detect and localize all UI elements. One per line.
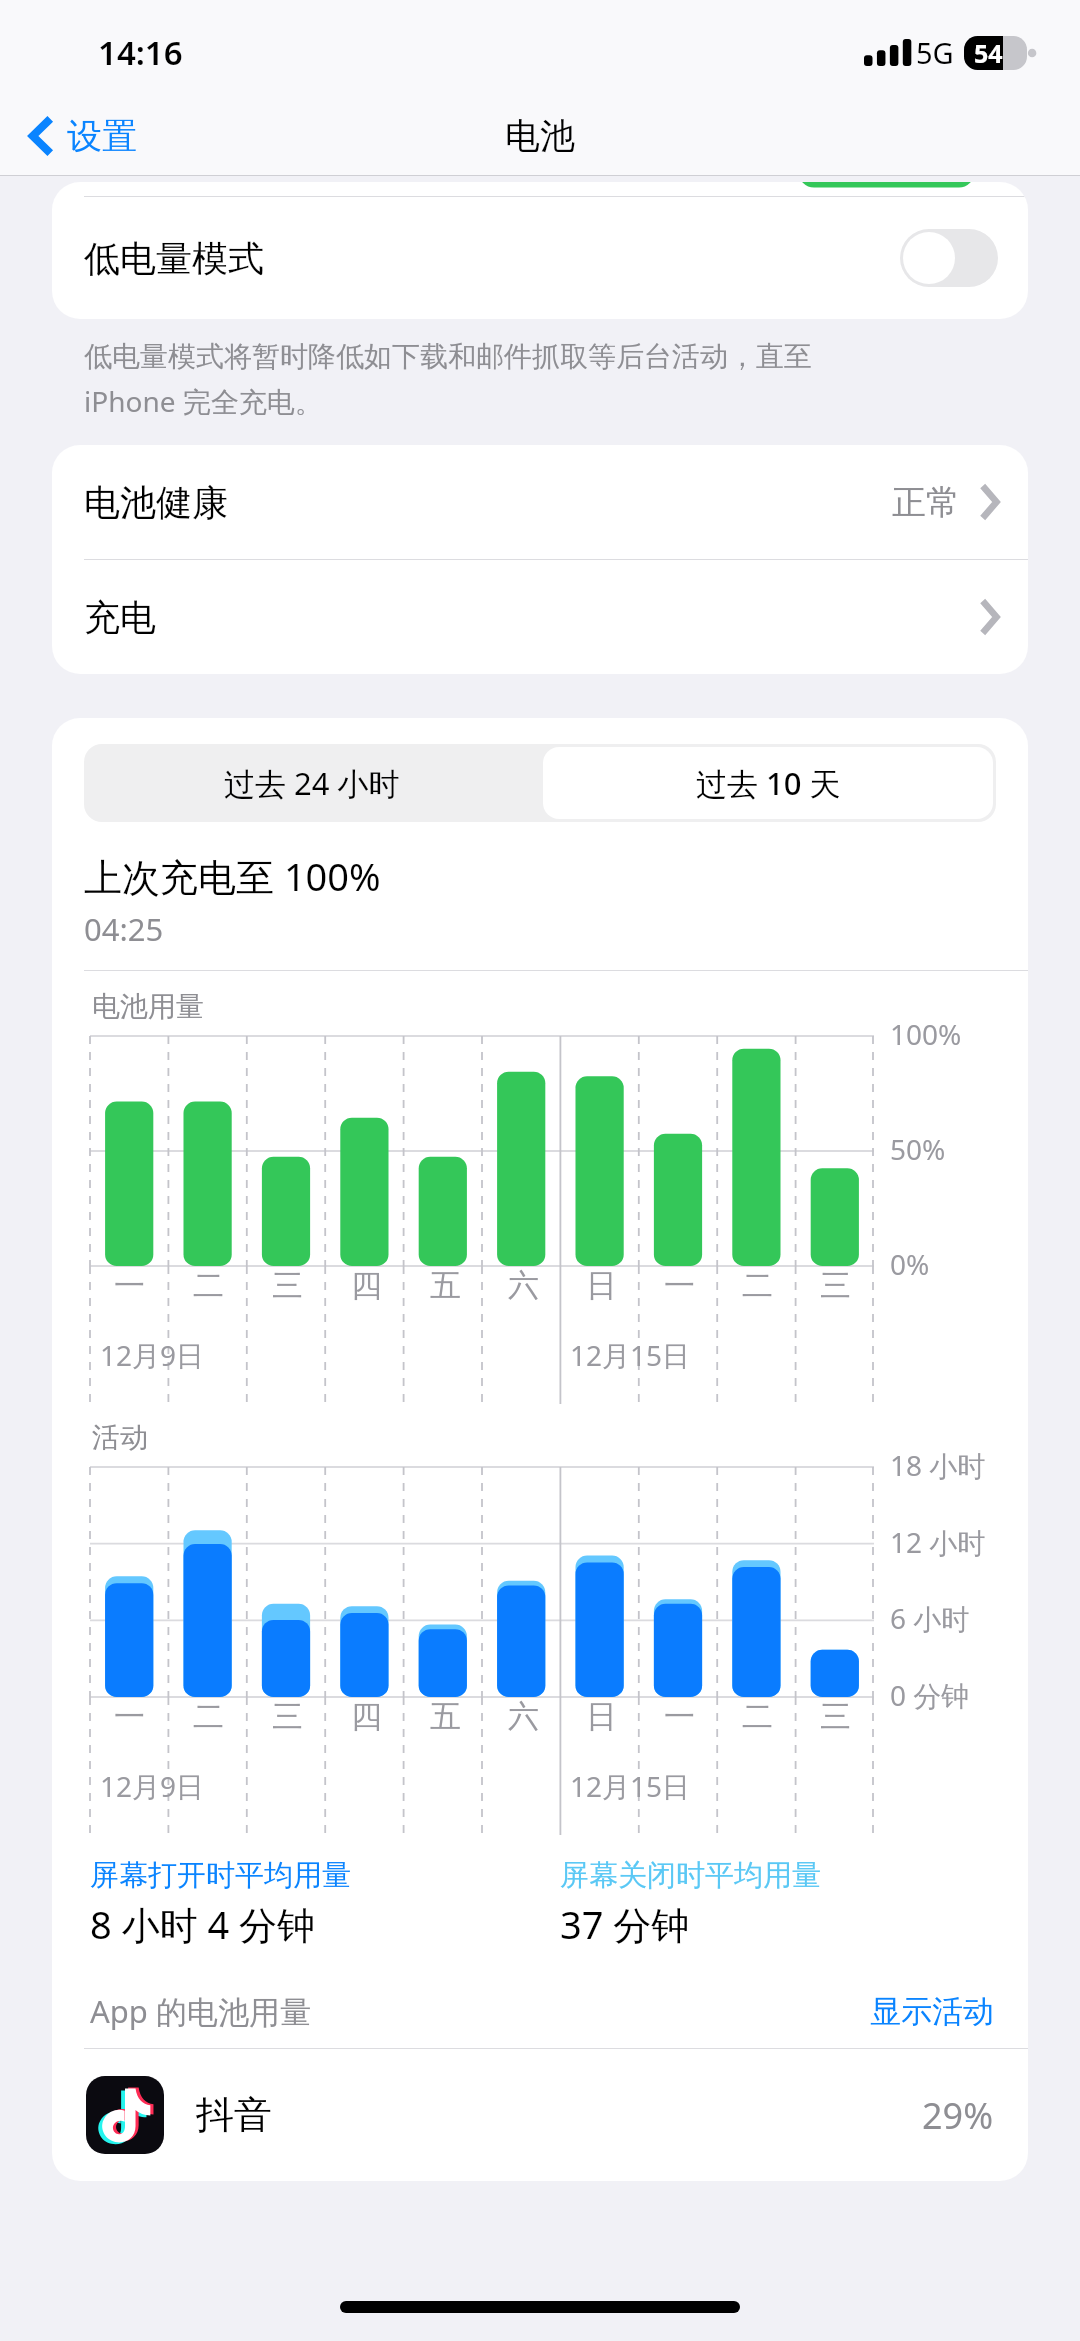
staticText: 日: [586, 1266, 617, 1305]
button[interactable]: 低电量模式: [52, 197, 1028, 319]
staticText: 电池用量: [92, 989, 204, 1024]
staticText: 12月9日: [100, 1336, 205, 1374]
button[interactable]: 显示活动: [870, 1992, 994, 2031]
staticText: 活动: [92, 1420, 148, 1455]
staticText: 5G: [916, 33, 954, 72]
staticText: 54: [974, 36, 1003, 70]
staticText: 一: [114, 1697, 145, 1736]
staticText: 三: [820, 1266, 851, 1305]
staticText: 12月9日: [100, 1767, 205, 1805]
staticText: 8 小时 4 分钟: [90, 1898, 316, 1950]
staticText: 37 分钟: [560, 1898, 690, 1950]
button[interactable]: Low Power Mode: [900, 229, 998, 287]
staticText: 100%: [890, 1015, 962, 1053]
staticText: 三: [820, 1697, 851, 1736]
staticText: 一: [664, 1266, 695, 1305]
staticText: 显示活动: [870, 1992, 994, 2031]
staticText: 屏幕关闭时平均用量: [560, 1857, 821, 1894]
staticText: 设置: [67, 114, 137, 158]
staticText: 正常: [892, 481, 960, 524]
staticText: 六: [508, 1266, 539, 1305]
staticText: 50%: [890, 1130, 946, 1168]
staticText: 六: [508, 1697, 539, 1736]
staticText: 二: [193, 1697, 224, 1736]
staticText: 四: [351, 1266, 382, 1305]
button[interactable]: 过去 24 小时: [84, 744, 540, 822]
staticText: 6 小时: [890, 1599, 970, 1637]
staticText: 04:25: [84, 908, 164, 950]
staticText: 0%: [890, 1245, 930, 1283]
staticText: 14:16: [98, 30, 183, 75]
staticText: 上次充电至 100%: [84, 850, 381, 902]
staticText: 三: [272, 1266, 303, 1305]
staticText: 18 小时: [890, 1446, 986, 1484]
staticText: 四: [351, 1697, 382, 1736]
button[interactable]: 设置: [22, 106, 145, 166]
staticText: 抖音: [196, 2091, 922, 2139]
staticText: 0 分钟: [890, 1676, 970, 1714]
button[interactable]: 电池健康: [52, 445, 1028, 559]
staticText: 三: [272, 1697, 303, 1736]
staticText: 充电: [84, 595, 980, 640]
staticText: 一: [664, 1697, 695, 1736]
button[interactable]: 充电: [52, 560, 1028, 674]
staticText: 一: [114, 1266, 145, 1305]
staticText: 日: [586, 1697, 617, 1736]
staticText: 五: [430, 1266, 461, 1305]
staticText: 二: [742, 1697, 773, 1736]
button[interactable]: 抖音: [52, 2049, 1028, 2181]
staticText: 二: [193, 1266, 224, 1305]
staticText: 低电量模式: [84, 236, 900, 281]
staticText: 低电量模式将暂时降低如下载和邮件抓取等后台活动，直至 iPhone 完全充电。: [84, 339, 812, 421]
staticText: 12 小时: [890, 1523, 986, 1561]
button[interactable]: 过去 10 天: [543, 747, 993, 819]
staticText: 过去 24 小时: [224, 762, 400, 804]
staticText: 29%: [922, 2091, 994, 2140]
staticText: 屏幕打开时平均用量: [90, 1857, 351, 1894]
staticText: 过去 10 天: [696, 762, 841, 804]
staticText: 电池健康: [84, 480, 892, 525]
staticText: App 的电池用量: [90, 1990, 870, 2032]
staticText: 12月15日: [570, 1336, 691, 1374]
staticText: 12月15日: [570, 1767, 691, 1805]
staticText: 电池: [505, 114, 575, 158]
staticText: 五: [430, 1697, 461, 1736]
staticText: 二: [742, 1266, 773, 1305]
